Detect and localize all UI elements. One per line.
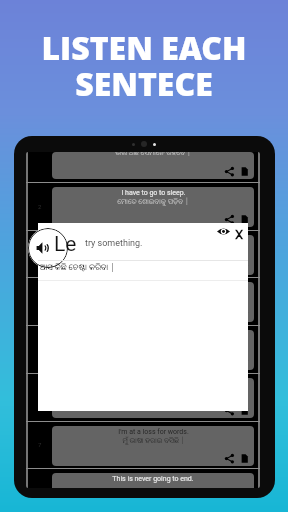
button[interactable]: I'm at a loss for words. (52, 426, 254, 466)
button[interactable]: Copy (239, 166, 250, 177)
staticText: X (235, 227, 244, 242)
button[interactable]: Copy (239, 357, 250, 368)
button[interactable]: I have to go to sleep. (52, 187, 254, 227)
staticText: This is never going to end. (112, 475, 194, 483)
button[interactable]: What do you mean? (52, 378, 254, 418)
button[interactable]: Close (232, 226, 246, 242)
staticText: I have to go to sleep. (121, 189, 186, 197)
staticText: 2 (38, 203, 42, 210)
staticText: I'm at a loss for words. (118, 428, 189, 436)
button[interactable]: Copy (239, 309, 250, 320)
staticText: ଭଲ ଅଛି ସେମାନେ ରହିବେ | (115, 152, 191, 158)
staticText: try something. (85, 238, 143, 249)
button[interactable]: Share (224, 214, 235, 225)
button[interactable]: Copy (239, 214, 250, 225)
button[interactable]: Share (224, 166, 235, 177)
button[interactable]: Let me think about it. (52, 330, 254, 370)
staticText: I can't believe it. (128, 237, 178, 245)
staticText: ମୁଁ ଭାଷା ହରାଇ ବସିଛି | (122, 436, 185, 446)
button[interactable]: This is never going to end. (52, 473, 254, 488)
button[interactable]: Play audio (28, 228, 68, 268)
staticText: 7 (38, 441, 42, 448)
button[interactable]: Copy (239, 405, 250, 416)
button[interactable]: Share (224, 405, 235, 416)
staticText: Le (54, 232, 77, 257)
button[interactable]: Copy (239, 262, 250, 273)
staticText: ମୁଁ ବିଶ୍ୱାସ କରିପାରୁନି | (124, 245, 182, 255)
button[interactable]: Copy (239, 453, 250, 464)
button[interactable]: Share (224, 453, 235, 464)
button[interactable]: It doesn't matter. (52, 282, 254, 322)
staticText: ଆସ କିଛି ଚେଷ୍ଟା କରିବା | (40, 261, 115, 272)
button[interactable]: ଭଲ ଅଛି ସେମାନେ ରହିବେ | (52, 152, 254, 179)
staticText: ମୋତେ ଶୋଇବାକୁ ପଡ଼ିବ | (117, 197, 189, 207)
button[interactable]: Show translation (215, 226, 229, 242)
staticText: LISTEN EACH (41, 26, 247, 70)
staticText: SENTECE (75, 62, 213, 106)
staticText: 3 (38, 251, 42, 258)
button[interactable]: I can't believe it. (52, 235, 254, 275)
